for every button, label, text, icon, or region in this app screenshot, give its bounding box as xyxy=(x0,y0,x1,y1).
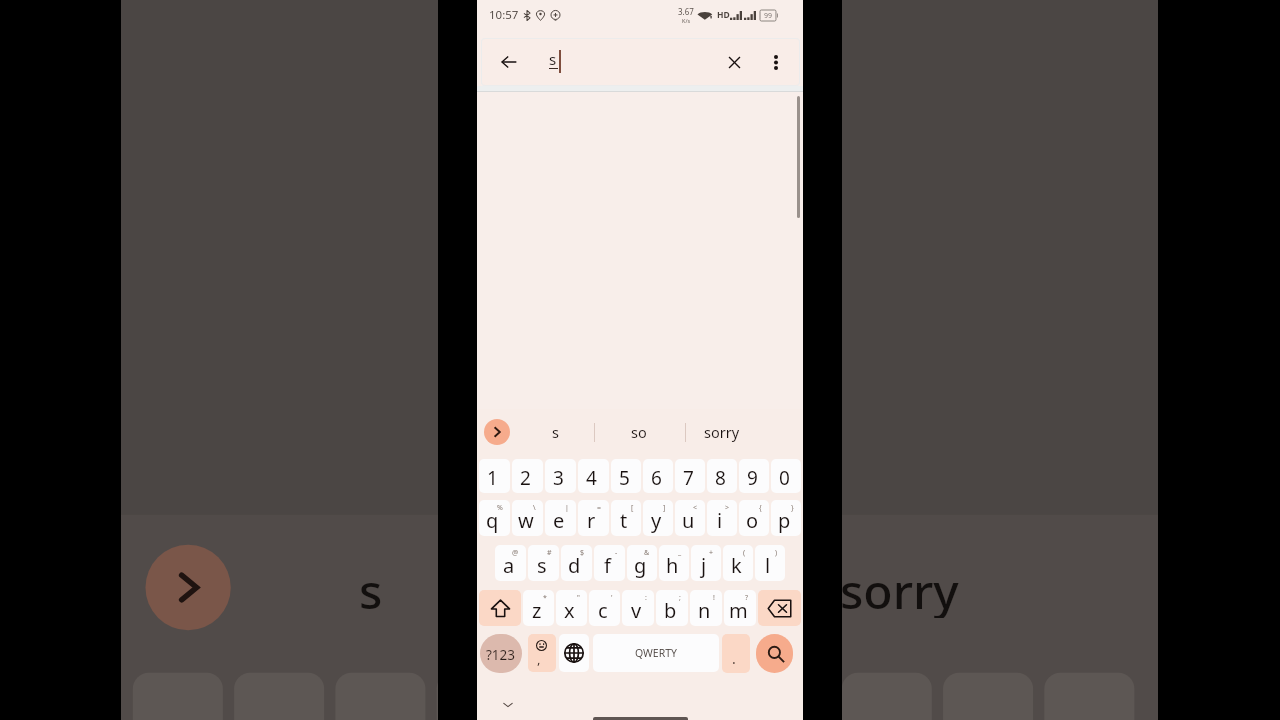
staticText: w xyxy=(518,507,534,534)
button[interactable]: l xyxy=(755,545,785,581)
button[interactable]: c xyxy=(589,590,620,626)
button[interactable]: so xyxy=(604,409,674,455)
staticText: sorry xyxy=(704,422,740,442)
staticText: s xyxy=(552,422,559,442)
staticText: sorry xyxy=(840,558,959,618)
button[interactable]: 7 xyxy=(675,459,705,493)
button[interactable]: f xyxy=(594,545,625,581)
staticText: \ xyxy=(533,503,536,513)
button[interactable]: 1 xyxy=(479,459,510,493)
staticText: t xyxy=(620,507,628,534)
button[interactable]: Search xyxy=(756,634,793,673)
staticText: # xyxy=(547,548,552,558)
button[interactable]: Hide keyboard xyxy=(500,697,516,713)
button[interactable]: i xyxy=(707,500,737,536)
button[interactable]: d xyxy=(561,545,592,581)
staticText: + xyxy=(709,548,714,558)
button[interactable]: m xyxy=(724,590,756,626)
button[interactable]: q xyxy=(479,500,510,536)
staticText: > xyxy=(725,503,730,513)
staticText: ( xyxy=(743,548,746,558)
staticText: l xyxy=(765,552,771,579)
staticText: < xyxy=(693,503,698,513)
button[interactable]: g xyxy=(627,545,657,581)
staticText: j xyxy=(701,552,707,579)
staticText: * xyxy=(543,593,547,603)
button[interactable]: ?123 xyxy=(480,634,522,673)
button[interactable]: Clear search xyxy=(712,39,756,85)
button[interactable]: Emoji xyxy=(528,634,556,672)
staticText: y xyxy=(651,507,662,534)
button[interactable]: o xyxy=(739,500,769,536)
staticText: 6 xyxy=(651,465,662,491)
button[interactable]: 8 xyxy=(707,459,737,493)
staticText: $ xyxy=(580,548,585,558)
button[interactable]: x xyxy=(556,590,587,626)
staticText: @ xyxy=(512,548,519,558)
staticText: f xyxy=(604,552,611,579)
button[interactable]: u xyxy=(675,500,705,536)
staticText: r xyxy=(587,507,596,534)
button[interactable]: 5 xyxy=(611,459,641,493)
button[interactable]: a xyxy=(495,545,526,581)
staticText: n xyxy=(698,597,711,624)
button[interactable]: 9 xyxy=(739,459,769,493)
button[interactable] xyxy=(479,590,521,626)
button[interactable]: Change keyboard language xyxy=(559,634,589,672)
button[interactable]: QWERTY xyxy=(593,634,719,672)
button[interactable]: 4 xyxy=(578,459,609,493)
button[interactable]: 3 xyxy=(545,459,576,493)
button[interactable]: k xyxy=(723,545,753,581)
button[interactable]: h xyxy=(659,545,689,581)
staticText: b xyxy=(664,597,677,624)
button[interactable]: p xyxy=(771,500,801,536)
button[interactable]: s xyxy=(520,409,590,455)
button[interactable]: z xyxy=(523,590,554,626)
button[interactable]: n xyxy=(690,590,722,626)
staticText: 7 xyxy=(683,465,694,491)
button[interactable]: More options xyxy=(760,39,792,85)
staticText: 5 xyxy=(619,465,630,491)
staticText: i xyxy=(717,507,723,534)
staticText: ; xyxy=(679,593,681,603)
button[interactable]: 6 xyxy=(643,459,673,493)
button[interactable]: r xyxy=(578,500,609,536)
button[interactable]: j xyxy=(691,545,721,581)
staticText: o xyxy=(746,507,759,534)
staticText: 3 xyxy=(553,465,564,491)
button[interactable]: 2 xyxy=(512,459,543,493)
button[interactable] xyxy=(758,590,801,626)
button[interactable]: y xyxy=(643,500,673,536)
staticText: : xyxy=(645,593,647,603)
button[interactable]: s xyxy=(528,545,559,581)
staticText: 4 xyxy=(586,465,597,491)
staticText: so xyxy=(631,422,647,442)
button[interactable]: b xyxy=(656,590,688,626)
button[interactable]: sorry xyxy=(687,409,757,455)
button[interactable]: w xyxy=(512,500,543,536)
button[interactable]: v xyxy=(622,590,654,626)
staticText: ) xyxy=(775,548,778,558)
staticText: s xyxy=(537,552,547,579)
staticText: 2 xyxy=(520,465,531,491)
staticText: , xyxy=(537,650,541,668)
button[interactable]: e xyxy=(545,500,576,536)
staticText: 9 xyxy=(747,465,758,491)
button[interactable]: Back xyxy=(489,39,529,85)
staticText: { xyxy=(759,503,762,513)
button[interactable]: t xyxy=(611,500,641,536)
button[interactable]: Expand suggestions xyxy=(484,419,510,445)
staticText: - xyxy=(615,548,618,558)
staticText: 3.67 xyxy=(678,6,694,17)
staticText: } xyxy=(791,503,794,513)
button[interactable]: . xyxy=(722,634,750,673)
staticText: u xyxy=(682,507,695,534)
staticText: " xyxy=(577,593,580,603)
button[interactable]: 0 xyxy=(771,459,801,493)
staticText: ' xyxy=(611,593,613,603)
staticText: [ xyxy=(631,503,634,513)
staticText: HD xyxy=(717,9,730,21)
staticText: s xyxy=(549,49,557,69)
staticText: c xyxy=(598,597,608,624)
staticText: s xyxy=(359,558,383,618)
